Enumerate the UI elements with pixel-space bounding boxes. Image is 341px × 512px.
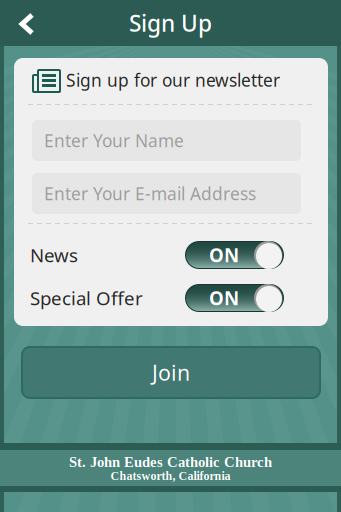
staticText: News bbox=[30, 243, 78, 267]
staticText: Enter Your E-mail Address bbox=[44, 182, 256, 205]
staticText: Enter Your Name bbox=[44, 129, 184, 152]
button[interactable]: Join bbox=[22, 347, 320, 398]
staticText: Join bbox=[152, 358, 190, 387]
button[interactable]: Enter Your Name bbox=[32, 120, 301, 161]
button[interactable]: Special Offer on bbox=[185, 284, 284, 312]
button[interactable]: Enter Your E-mail Address bbox=[32, 173, 301, 214]
staticText: Sign up for our newsletter bbox=[66, 68, 280, 91]
staticText: Sign Up bbox=[129, 8, 212, 38]
staticText: ON bbox=[209, 243, 239, 267]
button[interactable]: Back bbox=[6, 5, 50, 43]
staticText: St. John Eudes Catholic Church bbox=[69, 454, 272, 470]
staticText: Special Offer bbox=[30, 286, 143, 310]
button[interactable]: News on bbox=[185, 241, 284, 269]
staticText: Chatsworth, California bbox=[110, 469, 230, 483]
staticText: ON bbox=[209, 286, 239, 310]
